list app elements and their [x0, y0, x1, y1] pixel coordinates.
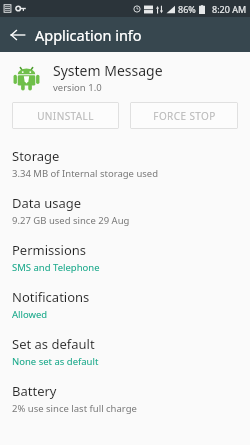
button[interactable]: UNINSTALL	[12, 102, 119, 129]
button[interactable]: Back	[0, 17, 35, 52]
staticText: Storage	[12, 147, 60, 165]
staticText: 2% use since last full charge	[12, 402, 137, 415]
staticText: version 1.0	[53, 81, 102, 94]
staticText: Notifications	[12, 288, 90, 306]
staticText: Battery	[12, 382, 57, 400]
button[interactable]: System Message	[0, 52, 250, 102]
staticText: UNINSTALL	[37, 109, 94, 123]
staticText: SMS and Telephone	[12, 261, 100, 274]
button[interactable]: FORCE STOP	[130, 102, 238, 129]
button[interactable]: Permissions	[0, 234, 250, 281]
staticText: Application info	[35, 25, 142, 45]
staticText: Data usage	[12, 194, 82, 212]
staticText: Permissions	[12, 241, 87, 259]
button[interactable]: Notifications	[0, 281, 250, 328]
button[interactable]: Set as default	[0, 328, 250, 375]
button[interactable]: Data usage	[0, 187, 250, 234]
staticText: Set as default	[12, 335, 95, 353]
staticText: 3.34 MB of Internal storage used	[12, 167, 159, 180]
button[interactable]: Battery	[0, 375, 250, 422]
staticText: FORCE STOP	[153, 109, 216, 123]
staticText: System Message	[53, 61, 163, 80]
staticText: 8:20 AM	[212, 3, 247, 15]
staticText: None set as default	[12, 355, 99, 368]
staticText: 9.27 GB used since 29 Aug	[12, 214, 130, 227]
staticText: 86%	[178, 3, 196, 15]
button[interactable]: Storage	[0, 140, 250, 187]
staticText: Allowed	[12, 308, 48, 321]
